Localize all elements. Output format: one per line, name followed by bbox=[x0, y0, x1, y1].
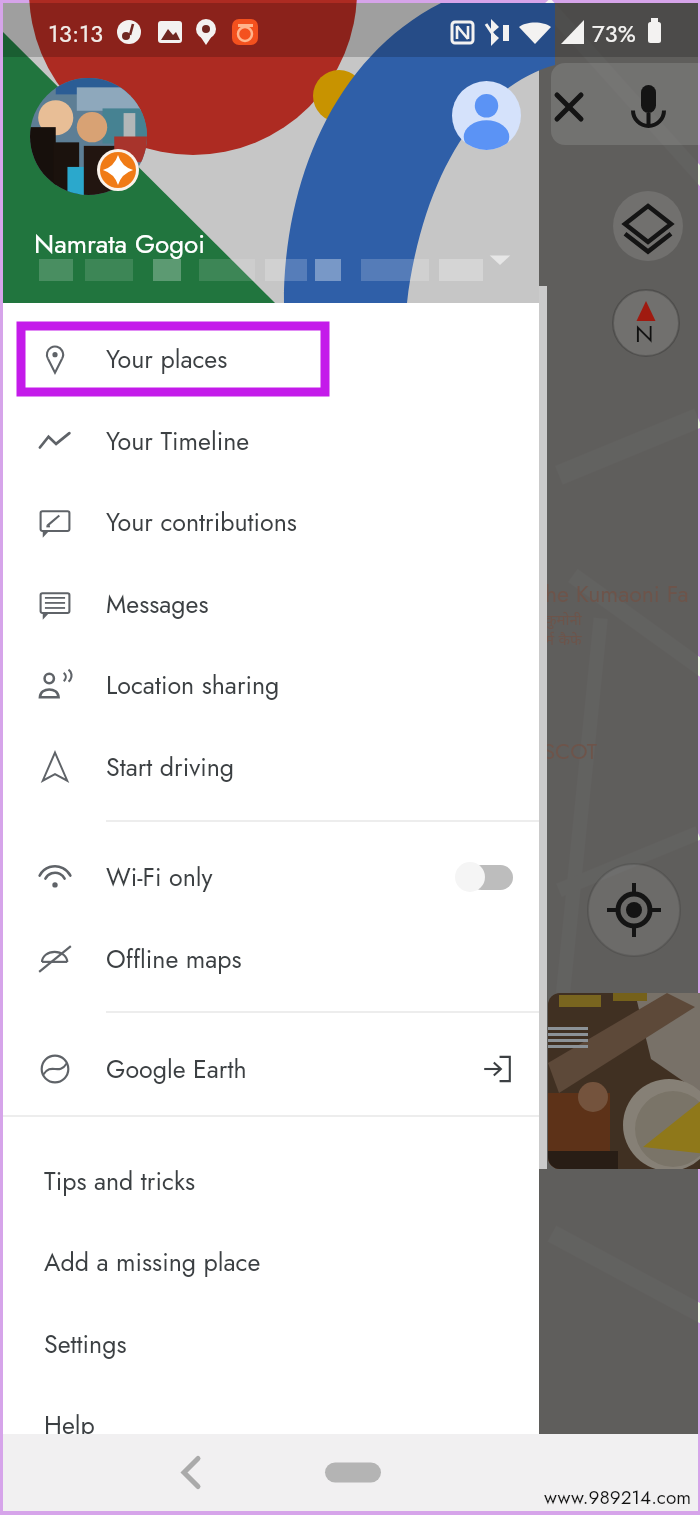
button[interactable]: Offline maps bbox=[3, 918, 539, 999]
staticText: Start driving bbox=[106, 749, 235, 785]
staticText: Wi-Fi only bbox=[106, 859, 213, 895]
button[interactable]: Location sharing bbox=[3, 644, 539, 725]
staticText: र्म कैफे bbox=[545, 629, 582, 651]
staticText: Settings bbox=[44, 1326, 127, 1362]
button[interactable]: Wi-Fi only bbox=[3, 836, 539, 917]
staticText: Your contributions bbox=[106, 504, 297, 540]
button[interactable]: Start driving bbox=[3, 726, 539, 807]
staticText: Offline maps bbox=[106, 941, 242, 977]
staticText: कुमाेनी bbox=[545, 609, 582, 629]
staticText: Your Timeline bbox=[106, 423, 250, 459]
staticText: Messages bbox=[106, 586, 209, 622]
button[interactable]: Settings bbox=[3, 1303, 539, 1384]
staticText: N bbox=[635, 316, 654, 351]
button[interactable]: Help bbox=[3, 1384, 539, 1465]
staticText: Location sharing bbox=[106, 667, 280, 703]
button[interactable]: Back bbox=[148, 1434, 228, 1511]
staticText: Namrata Gogoi bbox=[34, 225, 206, 263]
button[interactable]: Home bbox=[315, 1434, 393, 1511]
button[interactable]: Add a missing place bbox=[3, 1221, 539, 1302]
staticText: he Kumaoni Fa bbox=[545, 577, 689, 610]
staticText: SCOT bbox=[543, 735, 598, 767]
button[interactable]: Your places bbox=[3, 318, 539, 399]
staticText: Help bbox=[44, 1407, 95, 1443]
staticText: 73% bbox=[592, 16, 636, 51]
button[interactable]: Your contributions bbox=[3, 481, 539, 562]
staticText: www.989214.com bbox=[544, 1484, 692, 1511]
button[interactable]: Switch account bbox=[484, 244, 516, 276]
button[interactable]: Messages bbox=[3, 563, 539, 644]
button[interactable]: Account bbox=[452, 81, 521, 150]
staticText: Add a missing place bbox=[44, 1244, 261, 1280]
button[interactable]: Tips and tricks bbox=[3, 1140, 539, 1221]
staticText: Tips and tricks bbox=[44, 1163, 195, 1199]
button[interactable]: Your Timeline bbox=[3, 400, 539, 481]
button[interactable]: Google Earth bbox=[3, 1028, 539, 1109]
staticText: Google Earth bbox=[106, 1051, 247, 1087]
staticText: 13:13 bbox=[48, 16, 104, 51]
staticText: Your places bbox=[106, 341, 228, 377]
